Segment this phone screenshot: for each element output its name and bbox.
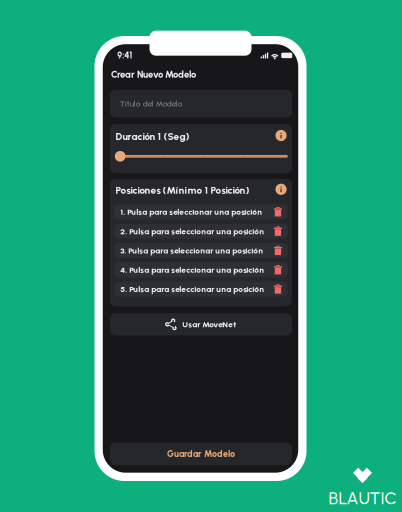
button[interactable]: 1. <box>114 204 288 219</box>
staticText: 3. <box>120 246 128 255</box>
staticText: Pulsa para seleccionar una posición <box>129 265 264 275</box>
staticText: BLAUTIC <box>328 488 396 508</box>
staticText: Usar MoveNet <box>182 319 236 329</box>
button[interactable]: Información de posiciones <box>275 184 287 195</box>
staticText: Duración 1 (Seg) <box>115 130 189 142</box>
staticText: Pulsa para seleccionar una posición <box>129 284 264 294</box>
staticText: Título del Modelo <box>120 99 183 108</box>
staticText: 4. <box>120 265 129 275</box>
button[interactable]: Información de duración <box>275 130 287 141</box>
staticText: 5. <box>120 284 129 294</box>
staticText: Pulsa para seleccionar una posición <box>128 246 263 255</box>
button[interactable]: 4. <box>114 262 288 277</box>
button[interactable]: Usar MoveNet <box>110 313 292 335</box>
staticText: 2. <box>120 226 129 236</box>
staticText: 1. <box>120 207 127 217</box>
button[interactable]: 5. <box>114 282 288 297</box>
button[interactable]: 3. <box>114 243 288 258</box>
staticText: Posiciones (Mínimo 1 Posición) <box>115 184 249 196</box>
staticText: Pulsa para seleccionar una posición <box>127 207 262 217</box>
staticText: Guardar Modelo <box>167 448 235 459</box>
button[interactable]: Guardar Modelo <box>110 443 292 465</box>
button[interactable]: Título del Modelo <box>110 90 292 117</box>
staticText: Pulsa para seleccionar una posición <box>129 226 264 236</box>
staticText: 9:41 <box>117 50 132 61</box>
button[interactable]: 2. <box>114 224 288 239</box>
staticText: Crear Nuevo Modelo <box>111 69 196 80</box>
